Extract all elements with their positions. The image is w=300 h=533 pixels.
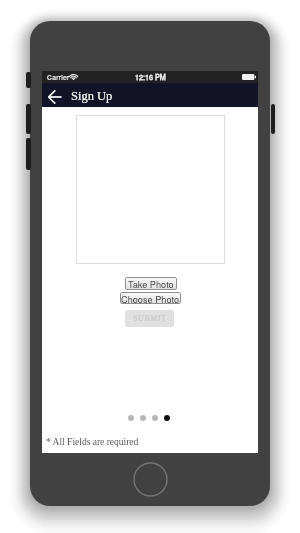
staticText: Take Photo [128, 277, 174, 290]
staticText: Carrier [47, 72, 70, 82]
button[interactable]: SUBMIT [125, 310, 174, 327]
staticText: * All Fields are required [46, 437, 139, 448]
staticText: SUBMIT [133, 314, 167, 323]
button[interactable]: Add photo [76, 115, 225, 264]
button[interactable]: Choose Photo [120, 292, 181, 304]
button[interactable]: Take Photo [125, 277, 177, 290]
staticText: Sign Up [71, 89, 113, 103]
button[interactable]: Back [46, 88, 64, 106]
staticText: Choose Photo [121, 292, 180, 304]
staticText: 12:16 PM [135, 72, 166, 82]
